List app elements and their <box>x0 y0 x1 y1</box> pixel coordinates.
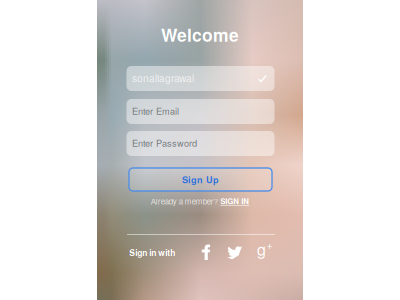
staticText: Sign in with <box>129 246 175 259</box>
staticText: SIGN IN <box>220 195 249 207</box>
button[interactable]: Already a member? <box>97 195 303 207</box>
button[interactable]: Sign in with Google Plus <box>257 237 273 260</box>
button[interactable]: Sign Up <box>129 168 272 191</box>
button[interactable]: Sign in with Facebook <box>201 244 210 260</box>
staticText: Sign Up <box>182 173 219 186</box>
button[interactable]: sonaliagrawal <box>126 66 274 91</box>
staticText: Enter Email <box>132 104 179 117</box>
staticText: + <box>267 237 273 252</box>
staticText: g <box>257 237 266 260</box>
button[interactable]: Enter Email <box>126 99 274 124</box>
button[interactable]: Enter Password <box>126 131 274 156</box>
staticText: Already a member? <box>151 195 218 207</box>
staticText: Welcome <box>161 22 239 47</box>
staticText: Enter Password <box>132 136 197 149</box>
button[interactable]: Sign in with Twitter <box>227 246 243 259</box>
staticText: sonaliagrawal <box>132 71 194 85</box>
